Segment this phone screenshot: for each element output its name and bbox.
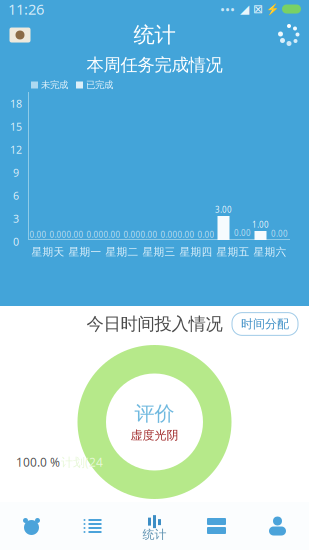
staticText: 统计 [142, 527, 166, 542]
staticText: 12 [10, 142, 22, 157]
staticText: 星期二 [105, 245, 138, 258]
staticText: 星期四 [179, 245, 212, 258]
staticText: ••• [220, 0, 235, 18]
staticText: 18 [10, 96, 22, 111]
staticText: 6 [13, 188, 19, 203]
button[interactable]: 时间分配 [232, 313, 298, 335]
button[interactable]: 卡片 [186, 502, 247, 550]
staticText: 未完成 [41, 79, 68, 91]
staticText: 100.0 % [16, 454, 60, 470]
staticText: 3 [13, 211, 19, 226]
button[interactable]: 刷新 [269, 15, 309, 55]
staticText: 0.00 [234, 228, 251, 238]
staticText: 星期天 [31, 245, 64, 258]
staticText: 3.00 [215, 204, 232, 215]
staticText: ◢ [240, 2, 249, 16]
staticText: 0.00 [86, 229, 103, 240]
staticText: 时间分配 [241, 317, 289, 331]
staticText: 0.00 [140, 229, 157, 240]
staticText: 统计 [133, 22, 175, 48]
staticText: ⚡ [266, 3, 279, 15]
staticText: 本周任务完成情况 [86, 54, 222, 76]
staticText: 计划(24 [61, 454, 103, 470]
staticText: 0.00 [49, 229, 66, 240]
button[interactable]: 统计 [123, 502, 186, 550]
staticText: 0.00 [66, 229, 83, 240]
staticText: 11:26 [8, 0, 44, 19]
staticText: 9 [13, 165, 19, 180]
staticText: 已完成 [86, 79, 113, 91]
staticText: 0.00 [29, 229, 46, 240]
button[interactable]: 任务列表 [62, 502, 123, 550]
staticText: 0.00 [103, 229, 120, 240]
button[interactable]: 我的 [247, 502, 308, 550]
staticText: 评价 [134, 401, 174, 426]
staticText: 今日时间投入情况 [86, 313, 222, 335]
staticText: 15 [10, 119, 22, 134]
staticText: 0 [13, 234, 19, 249]
staticText: 虚度光阴 [130, 428, 178, 443]
staticText: 星期六 [253, 245, 286, 258]
staticText: ⊠ [253, 2, 263, 16]
staticText: 星期三 [142, 245, 175, 258]
staticText: 0.00 [160, 229, 177, 240]
staticText: 1.00 [252, 219, 269, 230]
button[interactable]: 提醒 [1, 502, 62, 550]
staticText: 0.00 [123, 229, 140, 240]
staticText: 0.00 [177, 229, 194, 240]
staticText: 0.00 [271, 228, 288, 239]
staticText: 星期五 [216, 245, 249, 258]
staticText: 星期一 [68, 245, 101, 258]
button[interactable]: 账户 [0, 18, 40, 52]
staticText: 0.00 [197, 229, 214, 240]
